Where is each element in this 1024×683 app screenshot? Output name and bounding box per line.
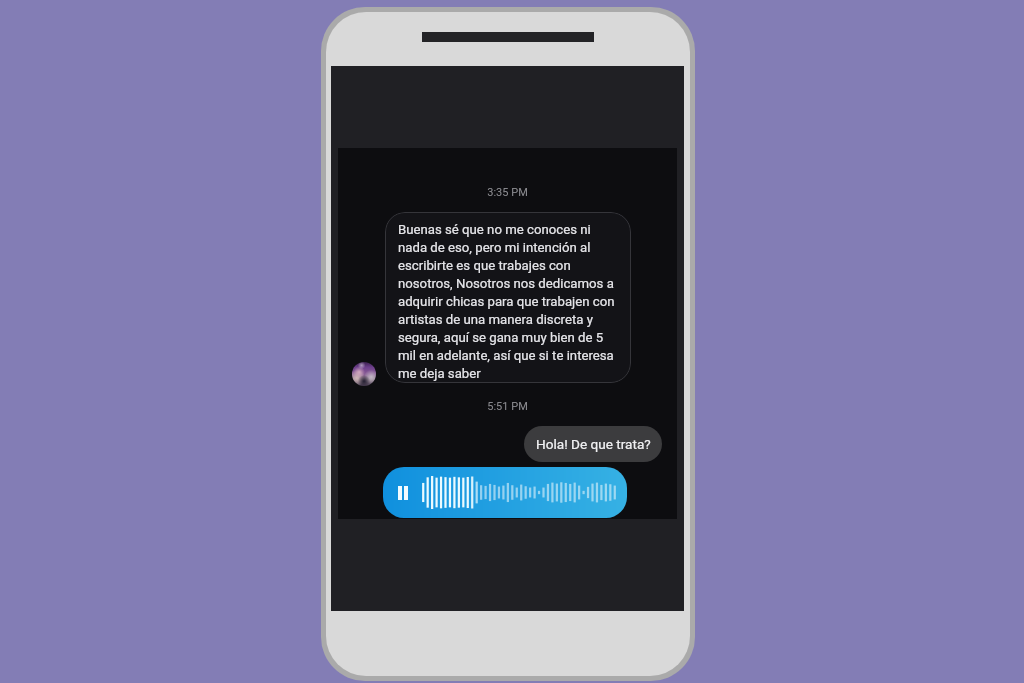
staticText: 3:35 PM (338, 186, 677, 199)
staticText: Hola! De que trata? (536, 436, 651, 452)
button[interactable]: Hola! De que trata? (524, 426, 662, 462)
button[interactable]: Play voice message (383, 467, 627, 518)
button[interactable]: Buenas sé que no me conoces ni nada de e… (385, 212, 631, 383)
button[interactable]: Contact profile photo (352, 362, 376, 386)
staticText: 5:51 PM (338, 400, 677, 413)
staticText: Buenas sé que no me conoces ni nada de e… (398, 222, 615, 381)
